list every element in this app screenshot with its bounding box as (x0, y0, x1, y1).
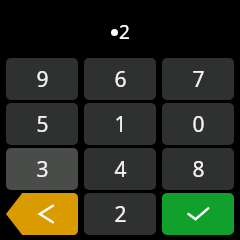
button[interactable]: 7 (162, 58, 234, 100)
staticText: 2 (114, 200, 127, 229)
button[interactable]: 8 (162, 148, 234, 190)
staticText: 6 (114, 65, 127, 94)
button[interactable]: 2 (84, 193, 156, 235)
button[interactable]: 4 (84, 148, 156, 190)
staticText: 4 (114, 155, 127, 184)
button[interactable]: 0 (162, 103, 234, 145)
staticText: 2 (119, 19, 130, 45)
staticText: 9 (36, 65, 49, 94)
button[interactable]: 6 (84, 58, 156, 100)
staticText: 3 (36, 155, 49, 184)
staticText: 8 (192, 155, 205, 184)
button[interactable]: Backspace (6, 193, 78, 235)
staticText: 5 (36, 110, 49, 139)
staticText: 1 (114, 110, 127, 139)
button[interactable]: 5 (6, 103, 78, 145)
button[interactable]: 9 (6, 58, 78, 100)
staticText: 0 (192, 110, 205, 139)
button[interactable]: 1 (84, 103, 156, 145)
button[interactable]: Confirm (162, 193, 234, 235)
button[interactable]: 3 (6, 148, 78, 190)
staticText: 7 (192, 65, 205, 94)
